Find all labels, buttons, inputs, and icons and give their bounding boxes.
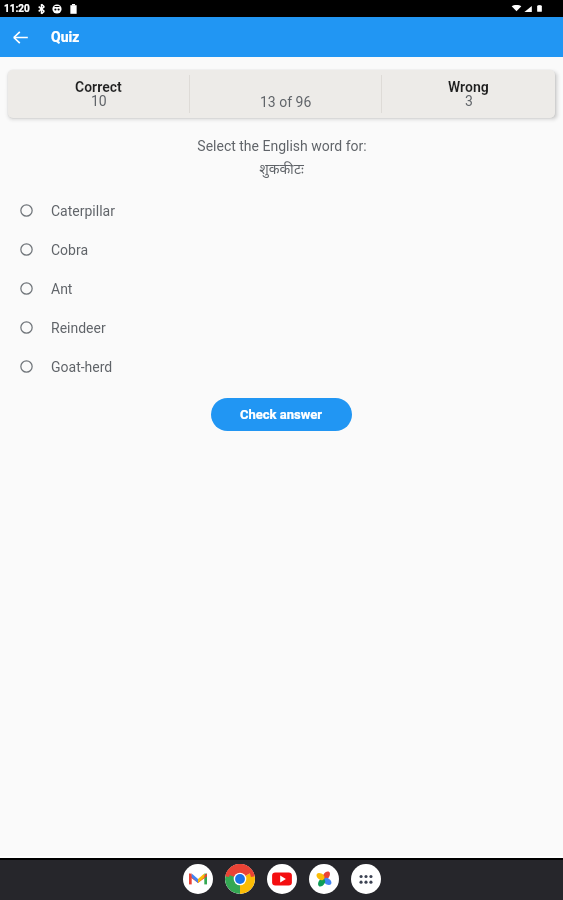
button[interactable]: Back [5, 22, 35, 52]
button[interactable]: Chrome [225, 864, 255, 894]
staticText: 11:20 [4, 3, 30, 15]
staticText: Caterpillar [51, 203, 115, 219]
button[interactable]: Cobra [0, 230, 563, 269]
staticText: 3 [465, 93, 473, 109]
button[interactable]: Gmail [183, 864, 213, 894]
button[interactable]: Goat-herd [0, 347, 563, 386]
button[interactable]: Photos [309, 864, 339, 894]
staticText: शुककीटः [259, 161, 304, 179]
staticText: Check answer [240, 407, 323, 422]
button[interactable]: All apps [351, 864, 381, 894]
button[interactable]: Caterpillar [0, 191, 563, 230]
staticText: Wrong [448, 79, 489, 95]
staticText: Cobra [51, 242, 89, 258]
staticText: Correct [75, 79, 122, 95]
staticText: Quiz [51, 29, 80, 45]
button[interactable]: Ant [0, 269, 563, 308]
staticText: Goat-herd [51, 359, 113, 375]
staticText: Reindeer [51, 320, 106, 336]
button[interactable]: Reindeer [0, 308, 563, 347]
staticText: 13 of 96 [260, 94, 312, 110]
button[interactable]: Check answer [211, 398, 352, 431]
button[interactable]: YouTube [267, 864, 297, 894]
staticText: Select the English word for: [197, 138, 367, 154]
staticText: 10 [91, 93, 107, 109]
staticText: Ant [51, 281, 73, 297]
